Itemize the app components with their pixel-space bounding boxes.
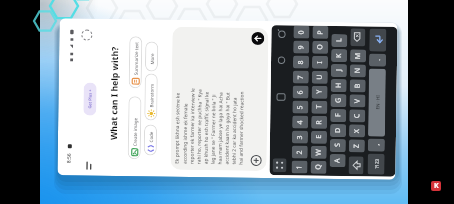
button[interactable]: 6: [292, 85, 309, 99]
staticText: H: [334, 82, 344, 88]
staticText: Q: [313, 164, 324, 170]
button[interactable]: P: [312, 26, 329, 39]
button[interactable]: Q: [310, 161, 327, 174]
staticText: C: [352, 113, 362, 118]
staticText: P: [315, 30, 325, 35]
button[interactable]: R: [311, 116, 327, 129]
staticText: G: [333, 97, 344, 103]
staticText: Z: [352, 143, 362, 148]
button[interactable]: M: [350, 49, 366, 62]
staticText: X: [352, 128, 362, 133]
button[interactable]: [82, 157, 97, 172]
staticText: 3: [295, 134, 305, 139]
staticText: F: [333, 113, 343, 117]
button[interactable]: N: [350, 64, 366, 77]
staticText: 8: [296, 59, 306, 65]
button[interactable]: .: [369, 53, 386, 67]
button[interactable]: O: [312, 41, 328, 54]
staticText: 0: [296, 29, 306, 35]
staticText: .: [374, 58, 382, 61]
staticText: E: [314, 135, 324, 139]
button[interactable]: [251, 32, 264, 45]
button[interactable]: [350, 28, 365, 46]
button[interactable]: Ek prompt likhna esh secene ke according…: [170, 27, 268, 171]
button[interactable]: Z: [349, 139, 365, 152]
button[interactable]: V: [349, 94, 366, 107]
button[interactable]: 2: [292, 145, 308, 159]
button[interactable]: I: [312, 56, 328, 69]
button[interactable]: Get Plus +: [83, 82, 97, 116]
button[interactable]: 0: [293, 25, 310, 39]
button[interactable]: L: [331, 34, 347, 47]
button[interactable]: Code: [144, 124, 157, 155]
staticText: W: [314, 149, 324, 156]
staticText: T: [314, 105, 324, 109]
staticText: 4: [295, 119, 305, 124]
button[interactable]: [369, 28, 386, 52]
button[interactable]: J: [331, 64, 347, 77]
button[interactable]: EN · HI: [368, 68, 386, 137]
button[interactable]: B: [350, 79, 366, 92]
staticText: O: [315, 44, 325, 50]
button[interactable]: Y: [311, 86, 328, 99]
staticText: Y: [315, 90, 325, 94]
staticText: L: [334, 38, 344, 42]
staticText: 6: [296, 89, 306, 95]
staticText: 1: [294, 164, 305, 169]
button[interactable]: W: [311, 146, 327, 159]
staticText: S: [333, 143, 343, 147]
button[interactable]: U: [312, 71, 328, 84]
staticText: A: [333, 158, 343, 163]
button[interactable]: S: [330, 139, 346, 152]
button[interactable]: [272, 158, 287, 172]
button[interactable]: ,: [368, 138, 385, 152]
staticText: R: [314, 120, 324, 125]
staticText: D: [333, 127, 343, 133]
staticText: Create image: [132, 117, 138, 146]
staticText: I: [315, 61, 325, 64]
button[interactable]: 4: [292, 115, 308, 129]
staticText: Ek prompt likhna esh secene ke according…: [174, 88, 245, 165]
button[interactable]: 8: [293, 55, 309, 69]
staticText: 2: [295, 149, 305, 154]
button[interactable]: A: [330, 154, 346, 167]
button[interactable]: 1: [291, 160, 308, 174]
staticText: What can I help with?: [107, 19, 122, 172]
button[interactable]: G: [330, 94, 347, 107]
button[interactable]: 9: [293, 40, 309, 54]
button[interactable]: Summarize text: [129, 36, 142, 88]
button[interactable]: K: [431, 181, 441, 191]
staticText: U: [315, 74, 325, 80]
button[interactable]: F: [330, 109, 346, 122]
button[interactable]: H: [331, 79, 347, 92]
staticText: ,: [373, 143, 381, 146]
staticText: M: [353, 52, 363, 59]
staticText: 9: [296, 44, 306, 50]
button[interactable]: E: [311, 131, 327, 144]
staticText: V: [352, 98, 363, 103]
button[interactable]: [348, 156, 364, 174]
button[interactable]: ?123: [367, 153, 385, 175]
staticText: Get Plus +: [87, 88, 93, 109]
button[interactable]: Create image: [128, 96, 142, 159]
staticText: J: [334, 69, 344, 71]
button[interactable]: 5: [292, 100, 308, 114]
staticText: K: [434, 181, 439, 191]
staticText: Brainstorm: [148, 83, 155, 107]
button[interactable]: X: [349, 124, 365, 137]
staticText: K: [334, 53, 344, 58]
staticText: 8:56: [66, 153, 73, 163]
button[interactable]: D: [330, 124, 346, 137]
button[interactable]: T: [311, 101, 327, 114]
staticText: ?123: [373, 158, 380, 169]
button[interactable]: 3: [292, 130, 308, 144]
button[interactable]: C: [349, 109, 365, 122]
staticText: B: [353, 83, 363, 88]
button[interactable]: Brainstorm: [144, 73, 158, 120]
staticText: N: [353, 67, 363, 73]
button[interactable]: K: [331, 49, 347, 62]
button[interactable]: 7: [293, 70, 309, 84]
button[interactable]: [80, 28, 93, 42]
staticText: EN · HI: [374, 95, 381, 110]
button[interactable]: More: [145, 41, 158, 71]
